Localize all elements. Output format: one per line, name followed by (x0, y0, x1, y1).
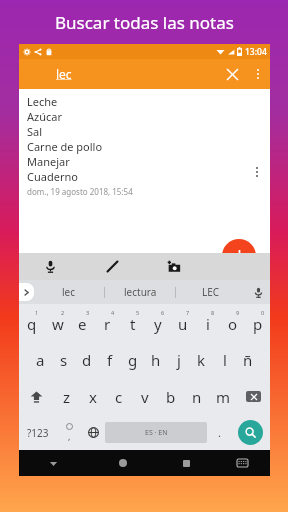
button[interactable]: Add note (222, 239, 256, 273)
staticText: h (151, 350, 161, 370)
button[interactable]: 4 (95, 304, 120, 341)
staticText: e (78, 314, 87, 334)
button[interactable]: n (184, 378, 210, 415)
button[interactable]: 7 (170, 304, 195, 341)
staticText: d (82, 350, 92, 370)
button[interactable]: x (80, 378, 106, 415)
button[interactable]: Emoji (57, 415, 81, 450)
staticText: k (197, 350, 206, 370)
button[interactable]: c (106, 378, 132, 415)
button[interactable]: ñ (236, 341, 259, 378)
button[interactable]: Search (238, 420, 263, 445)
staticText: ES · EN (145, 428, 168, 438)
staticText: y (154, 314, 162, 334)
staticText: 6 (161, 309, 165, 316)
button[interactable]: Switch keyboard (214, 450, 270, 476)
button[interactable]: 9 (220, 304, 245, 341)
button[interactable]: lec (34, 280, 104, 304)
button[interactable]: 2 (45, 304, 70, 341)
button[interactable]: LEC (176, 280, 246, 304)
staticText: 3 (86, 309, 90, 316)
staticText: lec (56, 66, 72, 82)
button[interactable]: Expand suggestions (19, 283, 34, 301)
staticText: dom., 19 agosto 2018, 15:54 (27, 186, 133, 197)
staticText: q (27, 314, 37, 334)
staticText: n (192, 387, 202, 407)
button[interactable]: Recents (158, 450, 214, 476)
staticText: 5 (136, 309, 140, 316)
staticText: Azúcar (27, 109, 62, 124)
button[interactable]: g (121, 341, 144, 378)
staticText: j (177, 350, 181, 370)
staticText: LEC (202, 285, 220, 299)
button[interactable]: Backspace (236, 378, 270, 415)
button[interactable]: 0 (245, 304, 270, 341)
staticText: a (36, 350, 45, 370)
button[interactable]: More options (246, 62, 270, 86)
button[interactable]: Photo note (143, 253, 205, 280)
button[interactable]: f (98, 341, 121, 378)
button[interactable]: . (207, 415, 231, 450)
staticText: , (68, 430, 71, 442)
button[interactable]: k (190, 341, 213, 378)
staticText: ñ (243, 350, 253, 370)
button[interactable]: a (29, 341, 52, 378)
button[interactable]: j (167, 341, 190, 378)
button[interactable]: Voice input (246, 280, 270, 304)
button[interactable]: b (158, 378, 184, 415)
staticText: Carne de pollo (27, 139, 103, 154)
button[interactable]: d (75, 341, 98, 378)
staticText: Buscar todas las notas (55, 11, 234, 34)
button[interactable]: h (144, 341, 167, 378)
button[interactable]: v (132, 378, 158, 415)
button[interactable]: 5 (120, 304, 145, 341)
button[interactable]: Draw note (81, 253, 143, 280)
button[interactable]: z (54, 378, 80, 415)
button[interactable]: m (210, 378, 236, 415)
staticText: r (104, 314, 111, 334)
button[interactable]: 6 (145, 304, 170, 341)
button[interactable]: Clear search (218, 60, 246, 88)
button[interactable]: 1 (19, 304, 45, 341)
staticText: 0 (261, 309, 265, 316)
staticText: w (52, 314, 64, 334)
staticText: 8 (211, 309, 215, 316)
staticText: . (218, 425, 221, 440)
staticText: Cuaderno (27, 169, 78, 184)
staticText: lec (62, 285, 76, 299)
staticText: 7 (186, 309, 190, 316)
staticText: i (206, 314, 210, 334)
button[interactable]: 8 (195, 304, 220, 341)
button[interactable]: l (213, 341, 236, 378)
staticText: v (141, 387, 149, 407)
staticText: Sal (27, 124, 43, 139)
staticText: 13:04 (245, 46, 267, 58)
button[interactable]: Shift (19, 378, 54, 415)
button[interactable]: Home (88, 450, 158, 476)
staticText: lectura (124, 285, 157, 299)
staticText: ?123 (27, 426, 49, 440)
staticText: f (107, 350, 113, 370)
staticText: b (166, 387, 176, 407)
button[interactable]: lectura (105, 280, 175, 304)
button[interactable]: s (52, 341, 75, 378)
staticText: l (223, 350, 227, 370)
button[interactable]: 3 (70, 304, 95, 341)
button[interactable]: Back (19, 450, 88, 476)
staticText: g (128, 350, 138, 370)
button[interactable]: Voice note (19, 253, 81, 280)
button[interactable]: Change language (81, 415, 105, 450)
button[interactable]: Note options (246, 161, 268, 183)
staticText: p (253, 314, 263, 334)
staticText: 9 (236, 309, 240, 316)
staticText: 1 (35, 309, 39, 316)
staticText: z (63, 387, 71, 407)
staticText: c (115, 387, 123, 407)
staticText: t (130, 314, 136, 334)
staticText: o (228, 314, 238, 334)
button[interactable]: ES · EN (105, 422, 207, 443)
staticText: u (178, 314, 188, 334)
staticText: x (89, 387, 97, 407)
button[interactable]: Leche (19, 89, 270, 253)
button[interactable]: ?123 (19, 415, 57, 450)
